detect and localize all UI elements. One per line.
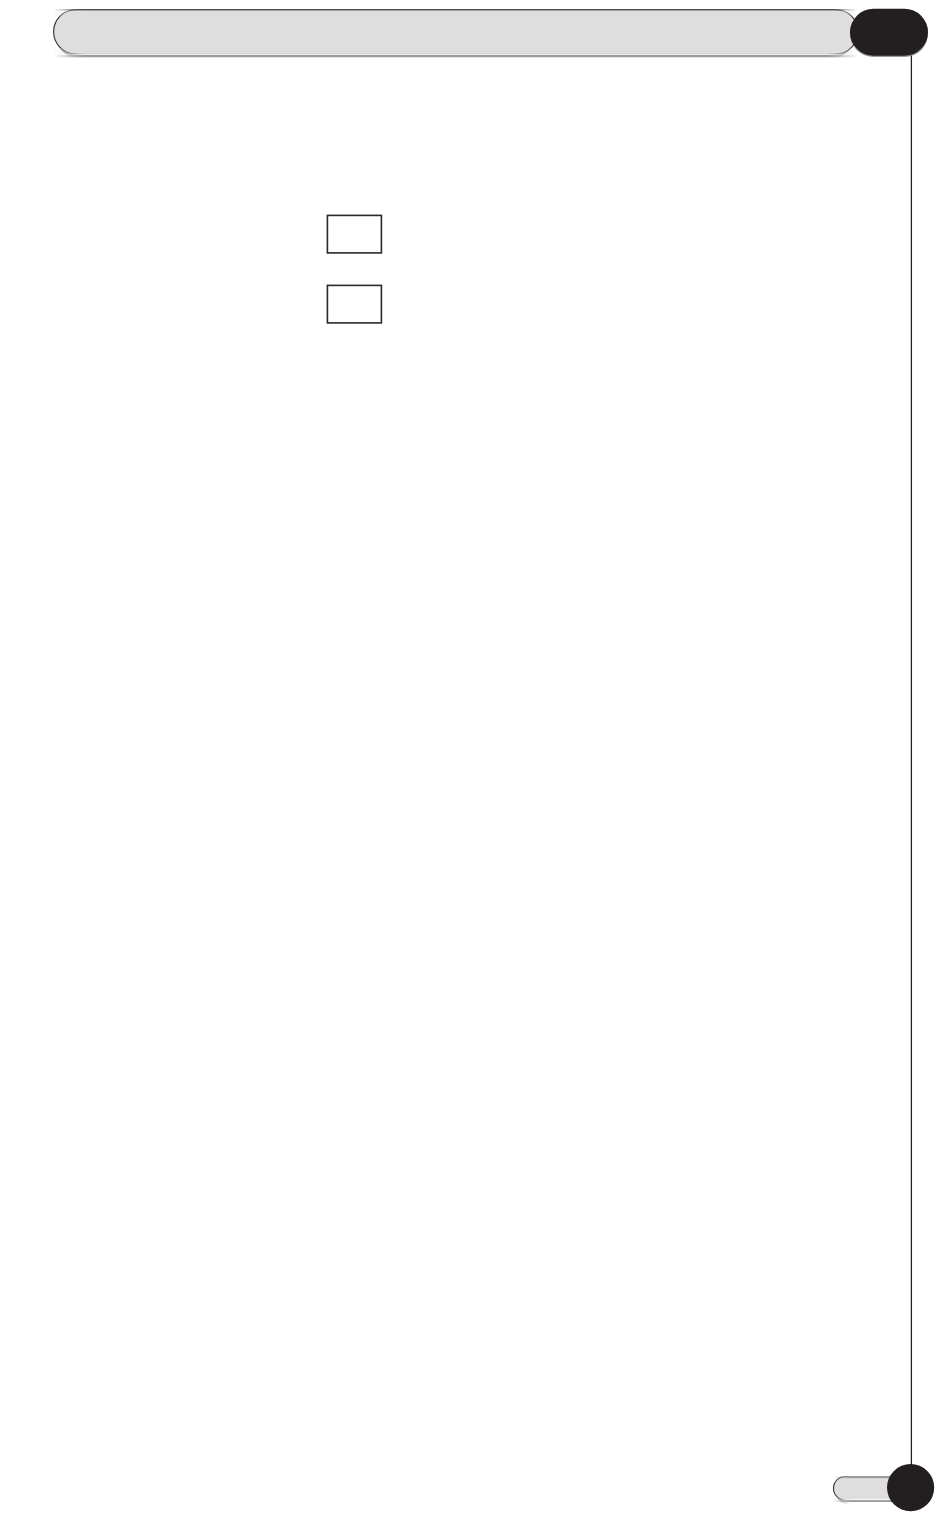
button[interactable]: Search — [53, 9, 850, 55]
button[interactable]: Second item — [327, 285, 381, 323]
button[interactable]: Status — [833, 1476, 911, 1502]
button[interactable]: Scroll — [888, 1464, 935, 1511]
button[interactable]: Profile — [850, 9, 928, 56]
button[interactable]: First item — [327, 215, 381, 253]
